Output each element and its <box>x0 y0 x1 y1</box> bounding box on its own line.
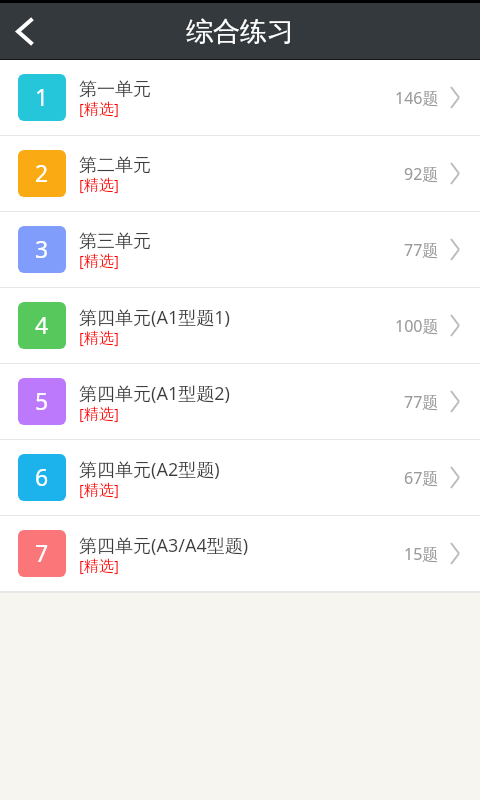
button[interactable]: 3 <box>0 212 480 287</box>
button[interactable]: 6 <box>0 440 480 515</box>
staticText: [精选] <box>79 98 119 118</box>
staticText: 1 <box>35 81 49 112</box>
staticText: 3 <box>35 233 49 264</box>
staticText: [精选] <box>79 555 119 575</box>
staticText: 第四单元(A1型题1) <box>79 305 230 330</box>
staticText: [精选] <box>79 174 119 194</box>
staticText: 77题 <box>404 239 439 261</box>
staticText: 92题 <box>404 163 439 185</box>
staticText: [精选] <box>79 250 119 270</box>
button[interactable]: 7 <box>0 516 480 591</box>
staticText: 5 <box>35 385 49 416</box>
staticText: 第四单元(A2型题) <box>79 457 220 482</box>
staticText: 15题 <box>404 543 439 565</box>
staticText: [精选] <box>79 403 119 423</box>
staticText: 第三单元 <box>79 230 151 253</box>
staticText: 综合练习 <box>186 15 294 49</box>
button[interactable]: Back <box>0 7 48 55</box>
staticText: 67题 <box>404 467 439 489</box>
staticText: 第四单元(A1型题2) <box>79 381 230 406</box>
staticText: 7 <box>35 537 49 568</box>
staticText: 4 <box>35 309 49 340</box>
staticText: 77题 <box>404 391 439 413</box>
staticText: 146题 <box>395 87 439 109</box>
staticText: 第二单元 <box>79 154 151 177</box>
staticText: 2 <box>35 157 49 188</box>
button[interactable]: 1 <box>0 60 480 135</box>
staticText: [精选] <box>79 479 119 499</box>
staticText: [精选] <box>79 327 119 347</box>
staticText: 100题 <box>395 315 439 337</box>
staticText: 第四单元(A3/A4型题) <box>79 533 249 558</box>
staticText: 6 <box>35 461 49 492</box>
button[interactable]: 5 <box>0 364 480 439</box>
staticText: 第一单元 <box>79 78 151 101</box>
button[interactable]: 2 <box>0 136 480 211</box>
button[interactable]: 4 <box>0 288 480 363</box>
